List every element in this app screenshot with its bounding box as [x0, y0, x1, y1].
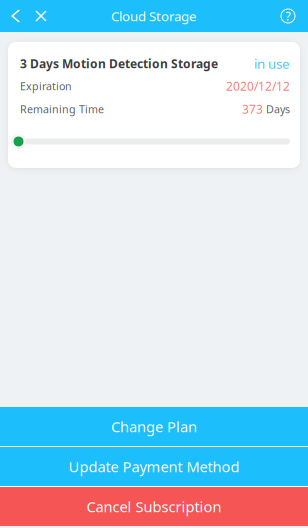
staticText: Update Payment Method: [68, 457, 239, 476]
button[interactable]: Change Plan: [0, 407, 308, 446]
staticText: ?: [285, 8, 290, 24]
button[interactable]: Help: [272, 0, 304, 32]
staticText: Change Plan: [111, 417, 197, 436]
staticText: Days: [263, 102, 290, 116]
button[interactable]: Cancel Subscription: [0, 487, 308, 526]
staticText: Remaining Time: [20, 102, 104, 116]
staticText: 3 Days Motion Detection Storage: [20, 55, 218, 71]
button[interactable]: Back: [4, 0, 28, 32]
staticText: in use: [254, 55, 290, 72]
staticText: 373: [242, 101, 263, 117]
staticText: Cancel Subscription: [86, 497, 221, 516]
button[interactable]: Close: [28, 0, 54, 32]
staticText: Cloud Storage: [111, 7, 197, 25]
button[interactable]: Update Payment Method: [0, 447, 308, 486]
staticText: Expiration: [20, 79, 72, 93]
staticText: 2020/12/12: [226, 78, 290, 94]
